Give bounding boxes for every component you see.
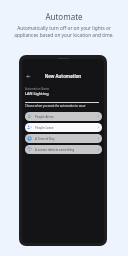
staticText: Automate: [0, 11, 128, 22]
staticText: Automatically turn off or on your lights…: [6, 25, 122, 38]
staticText: A Time of Day: [35, 137, 55, 141]
button[interactable]: A Time of Day: [25, 134, 102, 143]
staticText: New Automation: [22, 73, 104, 79]
staticText: Choose when you want the automation to o…: [25, 104, 86, 108]
staticText: LAN Lighting: [25, 91, 49, 96]
button[interactable]: A sensor detects something: [25, 145, 102, 154]
staticText: Automation Name: [25, 87, 50, 91]
button[interactable]: People Leave: [25, 123, 102, 132]
staticText: A sensor detects something: [35, 148, 75, 152]
button[interactable]: Back: [24, 72, 32, 80]
button[interactable]: People Arrive: [25, 112, 102, 121]
staticText: People Leave: [35, 126, 54, 130]
staticText: People Arrive: [35, 115, 54, 119]
